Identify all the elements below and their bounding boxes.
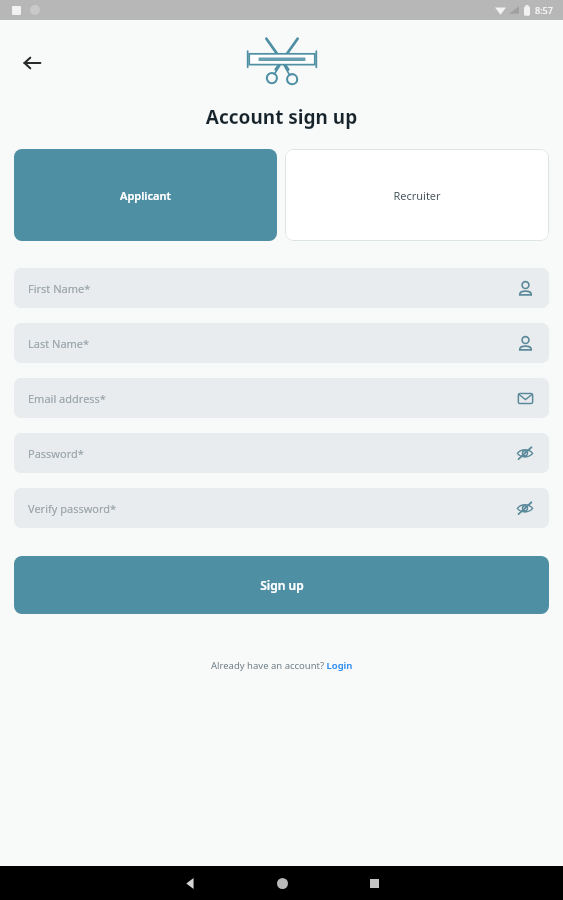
button[interactable]: Sign up	[14, 556, 549, 614]
staticText: Recruiter	[393, 188, 441, 203]
staticText: Sign up	[260, 577, 304, 593]
button[interactable]: Recent apps	[352, 866, 396, 900]
staticText: Already have an account? Login	[211, 659, 353, 672]
button[interactable]: Back	[8, 39, 56, 87]
button[interactable]: Recruiter	[285, 149, 549, 241]
button[interactable]: Back	[168, 866, 212, 900]
staticText: Account sign up	[0, 104, 563, 130]
button[interactable]: Last Name*	[14, 323, 549, 363]
staticText: Password*	[28, 446, 515, 461]
staticText: Applicant	[120, 188, 171, 203]
staticText: Verify password*	[28, 501, 515, 516]
staticText: 8:57	[535, 4, 553, 16]
button[interactable]: Already have an account? Login	[205, 657, 359, 674]
button[interactable]: Verify password*	[14, 488, 549, 528]
staticText: Last Name*	[28, 336, 515, 351]
button[interactable]: Applicant	[14, 149, 277, 241]
button[interactable]: First Name*	[14, 268, 549, 308]
staticText: First Name*	[28, 281, 515, 296]
button[interactable]: Home	[260, 866, 304, 900]
button[interactable]: Password*	[14, 433, 549, 473]
button[interactable]: Email address*	[14, 378, 549, 418]
staticText: Email address*	[28, 391, 515, 406]
